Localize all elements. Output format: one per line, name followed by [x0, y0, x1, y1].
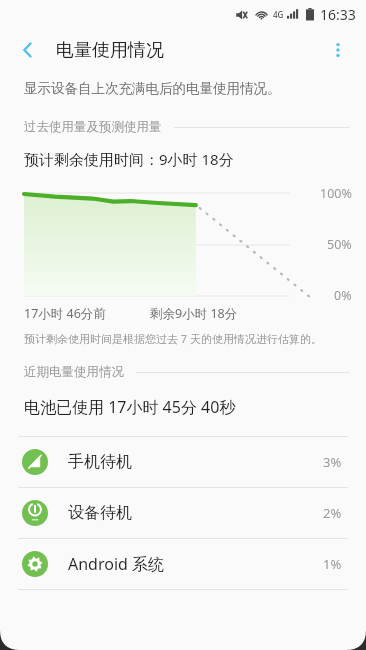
staticText: Android 系统	[68, 553, 323, 575]
button[interactable]: 更多选项	[318, 30, 358, 70]
staticText: 16:33	[320, 5, 356, 24]
staticText: 剩余9小时 18分	[150, 305, 238, 322]
staticText: 4G	[273, 9, 284, 20]
staticText: 电池已使用 17小时 45分 40秒	[24, 396, 236, 418]
staticText: 设备待机	[68, 503, 323, 523]
staticText: 3%	[323, 453, 342, 471]
staticText: 预计剩余使用时间是根据您过去 7 天的使用情况进行估算的。	[24, 331, 323, 346]
staticText: 100%	[320, 185, 352, 202]
button[interactable]: Android 系统	[0, 539, 366, 589]
staticText: 过去使用量及预测使用量	[24, 119, 162, 135]
staticText: 1%	[323, 555, 342, 573]
staticText: 17小时 46分前	[24, 305, 106, 322]
button[interactable]: 返回	[10, 32, 46, 68]
staticText: 2%	[323, 504, 342, 522]
staticText: 电量使用情况	[56, 39, 164, 62]
staticText: 近期电量使用情况	[24, 364, 124, 380]
staticText: 0%	[334, 287, 352, 301]
button[interactable]: 手机待机	[0, 437, 366, 487]
staticText: 手机待机	[68, 452, 323, 472]
button[interactable]: 设备待机	[0, 488, 366, 538]
staticText: 显示设备自上次充满电后的电量使用情况。	[24, 80, 281, 97]
staticText: 50%	[327, 236, 352, 253]
staticText: 预计剩余使用时间：9小时 18分	[24, 149, 234, 169]
